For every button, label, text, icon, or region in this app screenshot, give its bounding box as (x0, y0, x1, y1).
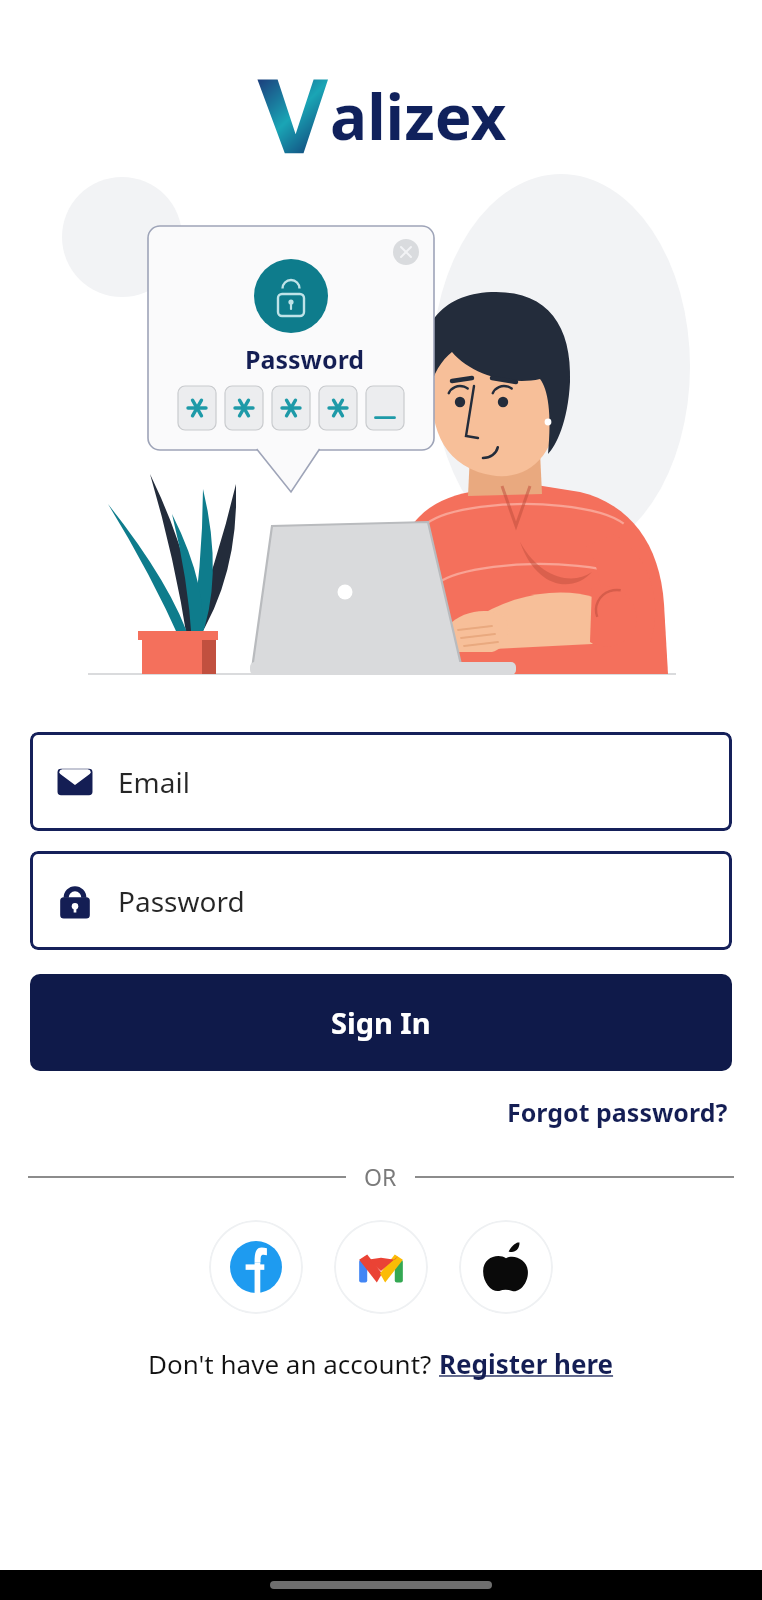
staticText: Forgot password? (507, 1095, 728, 1129)
staticText: Email (118, 763, 190, 801)
button[interactable]: Password (30, 851, 732, 950)
button[interactable]: Email (30, 732, 732, 831)
button[interactable]: Forgot password? (503, 1091, 732, 1133)
button[interactable]: Sign in with Apple (459, 1220, 553, 1314)
staticText: alizex (330, 74, 507, 158)
staticText: Don't have an account? (148, 1346, 439, 1381)
staticText: OR (364, 1161, 397, 1192)
button[interactable]: Sign In (30, 974, 732, 1071)
staticText: Password (245, 342, 365, 376)
staticText: Register here (439, 1346, 614, 1381)
button[interactable]: Sign in with Google (334, 1220, 428, 1314)
button[interactable]: Register here (439, 1346, 614, 1381)
staticText: Password (118, 882, 245, 920)
staticText: Sign In (331, 1003, 431, 1042)
button[interactable]: Sign in with Facebook (209, 1220, 303, 1314)
